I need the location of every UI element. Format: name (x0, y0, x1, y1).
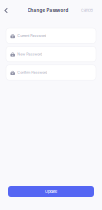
staticText: Change Password (27, 8, 68, 13)
staticText: Update (45, 189, 57, 194)
staticText: Confirm Password (17, 70, 47, 75)
button[interactable]: Update (8, 186, 94, 197)
button[interactable]: New Password (6, 46, 96, 62)
staticText: Current Password (17, 33, 46, 38)
button[interactable]: Back (0, 2, 12, 18)
staticText: Cancel (81, 8, 93, 13)
button[interactable]: Cancel (77, 2, 102, 18)
button[interactable]: Current Password (6, 28, 96, 43)
button[interactable]: Confirm Password (6, 65, 96, 80)
staticText: New Password (17, 52, 42, 56)
